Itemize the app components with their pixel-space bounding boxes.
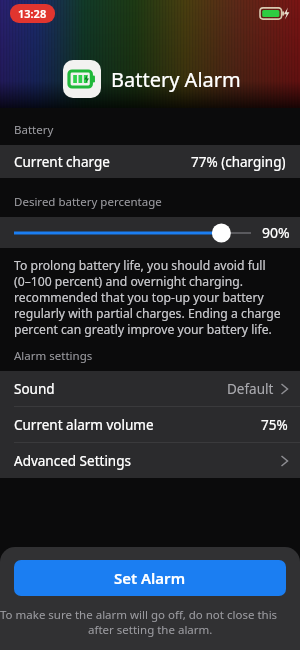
staticText: 75%: [261, 416, 288, 434]
staticText: Alarm settings: [14, 348, 93, 364]
button[interactable]: Set Alarm: [14, 560, 286, 596]
button[interactable]: Current alarm volume: [0, 407, 300, 442]
staticText: Advanced Settings: [14, 452, 131, 470]
button[interactable]: Sound: [0, 371, 300, 406]
staticText: regularly with partial charges. Ending a…: [14, 305, 286, 321]
staticText: percent can greatly improve your battery…: [14, 321, 272, 337]
button[interactable]: Advanced Settings: [0, 443, 300, 478]
staticText: 13:28: [18, 6, 47, 21]
staticText: Sound: [14, 380, 55, 398]
other: Battery charging: [260, 7, 290, 20]
staticText: Set Alarm: [114, 568, 186, 588]
staticText: 90%: [262, 223, 290, 242]
staticText: Current charge: [14, 153, 110, 171]
staticText: Desired battery percentage: [14, 194, 162, 210]
staticText: Default: [227, 380, 274, 398]
staticText: Battery Alarm: [111, 66, 241, 93]
staticText: 77% (charging): [191, 153, 286, 171]
staticText: To make sure the alarm will go off, do n…: [0, 607, 300, 622]
staticText: Battery: [14, 122, 54, 138]
staticText: (0–100 percent) and overnight charging. …: [14, 273, 286, 289]
button[interactable]: Desired battery percentage slider: [14, 223, 251, 243]
staticText: Current alarm volume: [14, 416, 154, 434]
staticText: To prolong battery life, you should avoi…: [14, 257, 286, 273]
button[interactable]: Current charge: [0, 145, 300, 178]
staticText: after setting the alarm.: [88, 622, 213, 637]
staticText: recommended that you top-up your battery…: [14, 289, 286, 305]
